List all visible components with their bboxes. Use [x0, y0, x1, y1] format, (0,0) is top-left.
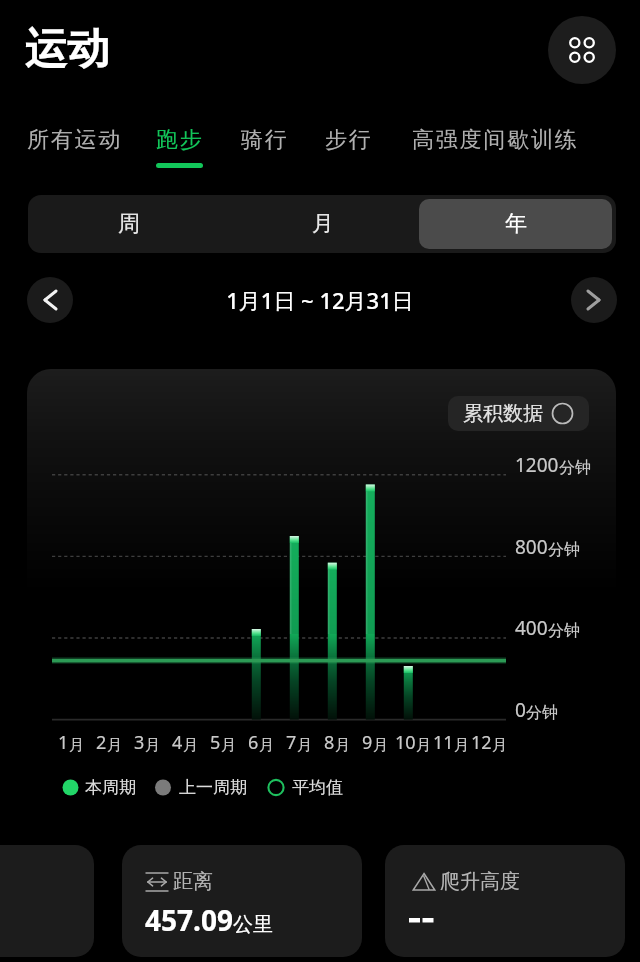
staticText: 4	[172, 730, 183, 755]
staticText: 运动	[25, 23, 109, 76]
staticText: 5	[210, 730, 221, 755]
staticText: 8	[324, 730, 335, 755]
button[interactable]: Next period	[571, 277, 617, 323]
staticText: 月	[416, 736, 431, 755]
staticText: 步行	[325, 126, 373, 154]
button[interactable]: 周	[32, 199, 226, 249]
staticText: 400	[515, 615, 548, 641]
button[interactable]: 所有运动	[27, 126, 123, 154]
staticText: 所有运动	[27, 126, 123, 154]
staticText: 7	[286, 730, 297, 755]
staticText: 2	[96, 730, 107, 755]
staticText: 457.09	[145, 901, 233, 939]
staticText: 月	[454, 736, 469, 755]
staticText: 6	[248, 730, 259, 755]
staticText: 周	[118, 210, 140, 238]
staticText: 月	[335, 736, 350, 755]
staticText: 爬升高度	[440, 869, 520, 894]
staticText: 年	[505, 210, 527, 238]
button[interactable]: 高强度间歇训练	[412, 126, 579, 154]
button[interactable]: 爬升高度	[385, 845, 625, 957]
staticText: 分钟	[548, 621, 580, 641]
button[interactable]: 月	[226, 199, 419, 249]
staticText: 高强度间歇训练	[412, 126, 579, 154]
button[interactable]: 累积数据	[448, 396, 589, 431]
button[interactable]: Previous statistic	[0, 845, 94, 957]
staticText: 12	[471, 730, 492, 755]
staticText: 1200	[515, 452, 559, 478]
staticText: 10	[395, 730, 416, 755]
button[interactable]: 步行	[325, 126, 373, 154]
staticText: 月	[373, 736, 388, 755]
staticText: 月	[69, 736, 84, 755]
staticText: 距离	[173, 869, 213, 894]
staticText: 平均值	[292, 777, 343, 798]
staticText: 月	[145, 736, 160, 755]
button[interactable]: 距离	[122, 845, 362, 957]
staticText: 月	[297, 736, 312, 755]
staticText: 月	[221, 736, 236, 755]
staticText: 月	[312, 210, 334, 238]
staticText: 11	[433, 730, 454, 755]
staticText: 上一周期	[179, 777, 247, 798]
button[interactable]: Apps	[548, 16, 616, 84]
button[interactable]: 跑步	[156, 126, 204, 168]
staticText: 月	[259, 736, 274, 755]
staticText: 1	[58, 730, 69, 755]
staticText: 跑步	[156, 126, 204, 154]
button[interactable]: 骑行	[241, 126, 289, 154]
staticText: 本周期	[85, 777, 136, 798]
staticText: 月	[107, 736, 122, 755]
staticText: 月	[492, 736, 507, 755]
staticText: 0	[515, 697, 526, 723]
staticText: 分钟	[526, 703, 558, 723]
button[interactable]: 年	[419, 199, 612, 249]
staticText: 月	[183, 736, 198, 755]
staticText: 800	[515, 534, 548, 560]
staticText: 公里	[233, 912, 273, 937]
button[interactable]: Previous period	[27, 277, 73, 323]
staticText: 累积数据	[463, 401, 543, 426]
staticText: 分钟	[548, 540, 580, 560]
staticText: 1月1日 ~ 12月31日	[0, 285, 640, 315]
staticText: 分钟	[559, 458, 591, 478]
staticText: 9	[362, 730, 373, 755]
staticText: 3	[134, 730, 145, 755]
staticText: 骑行	[241, 126, 289, 154]
